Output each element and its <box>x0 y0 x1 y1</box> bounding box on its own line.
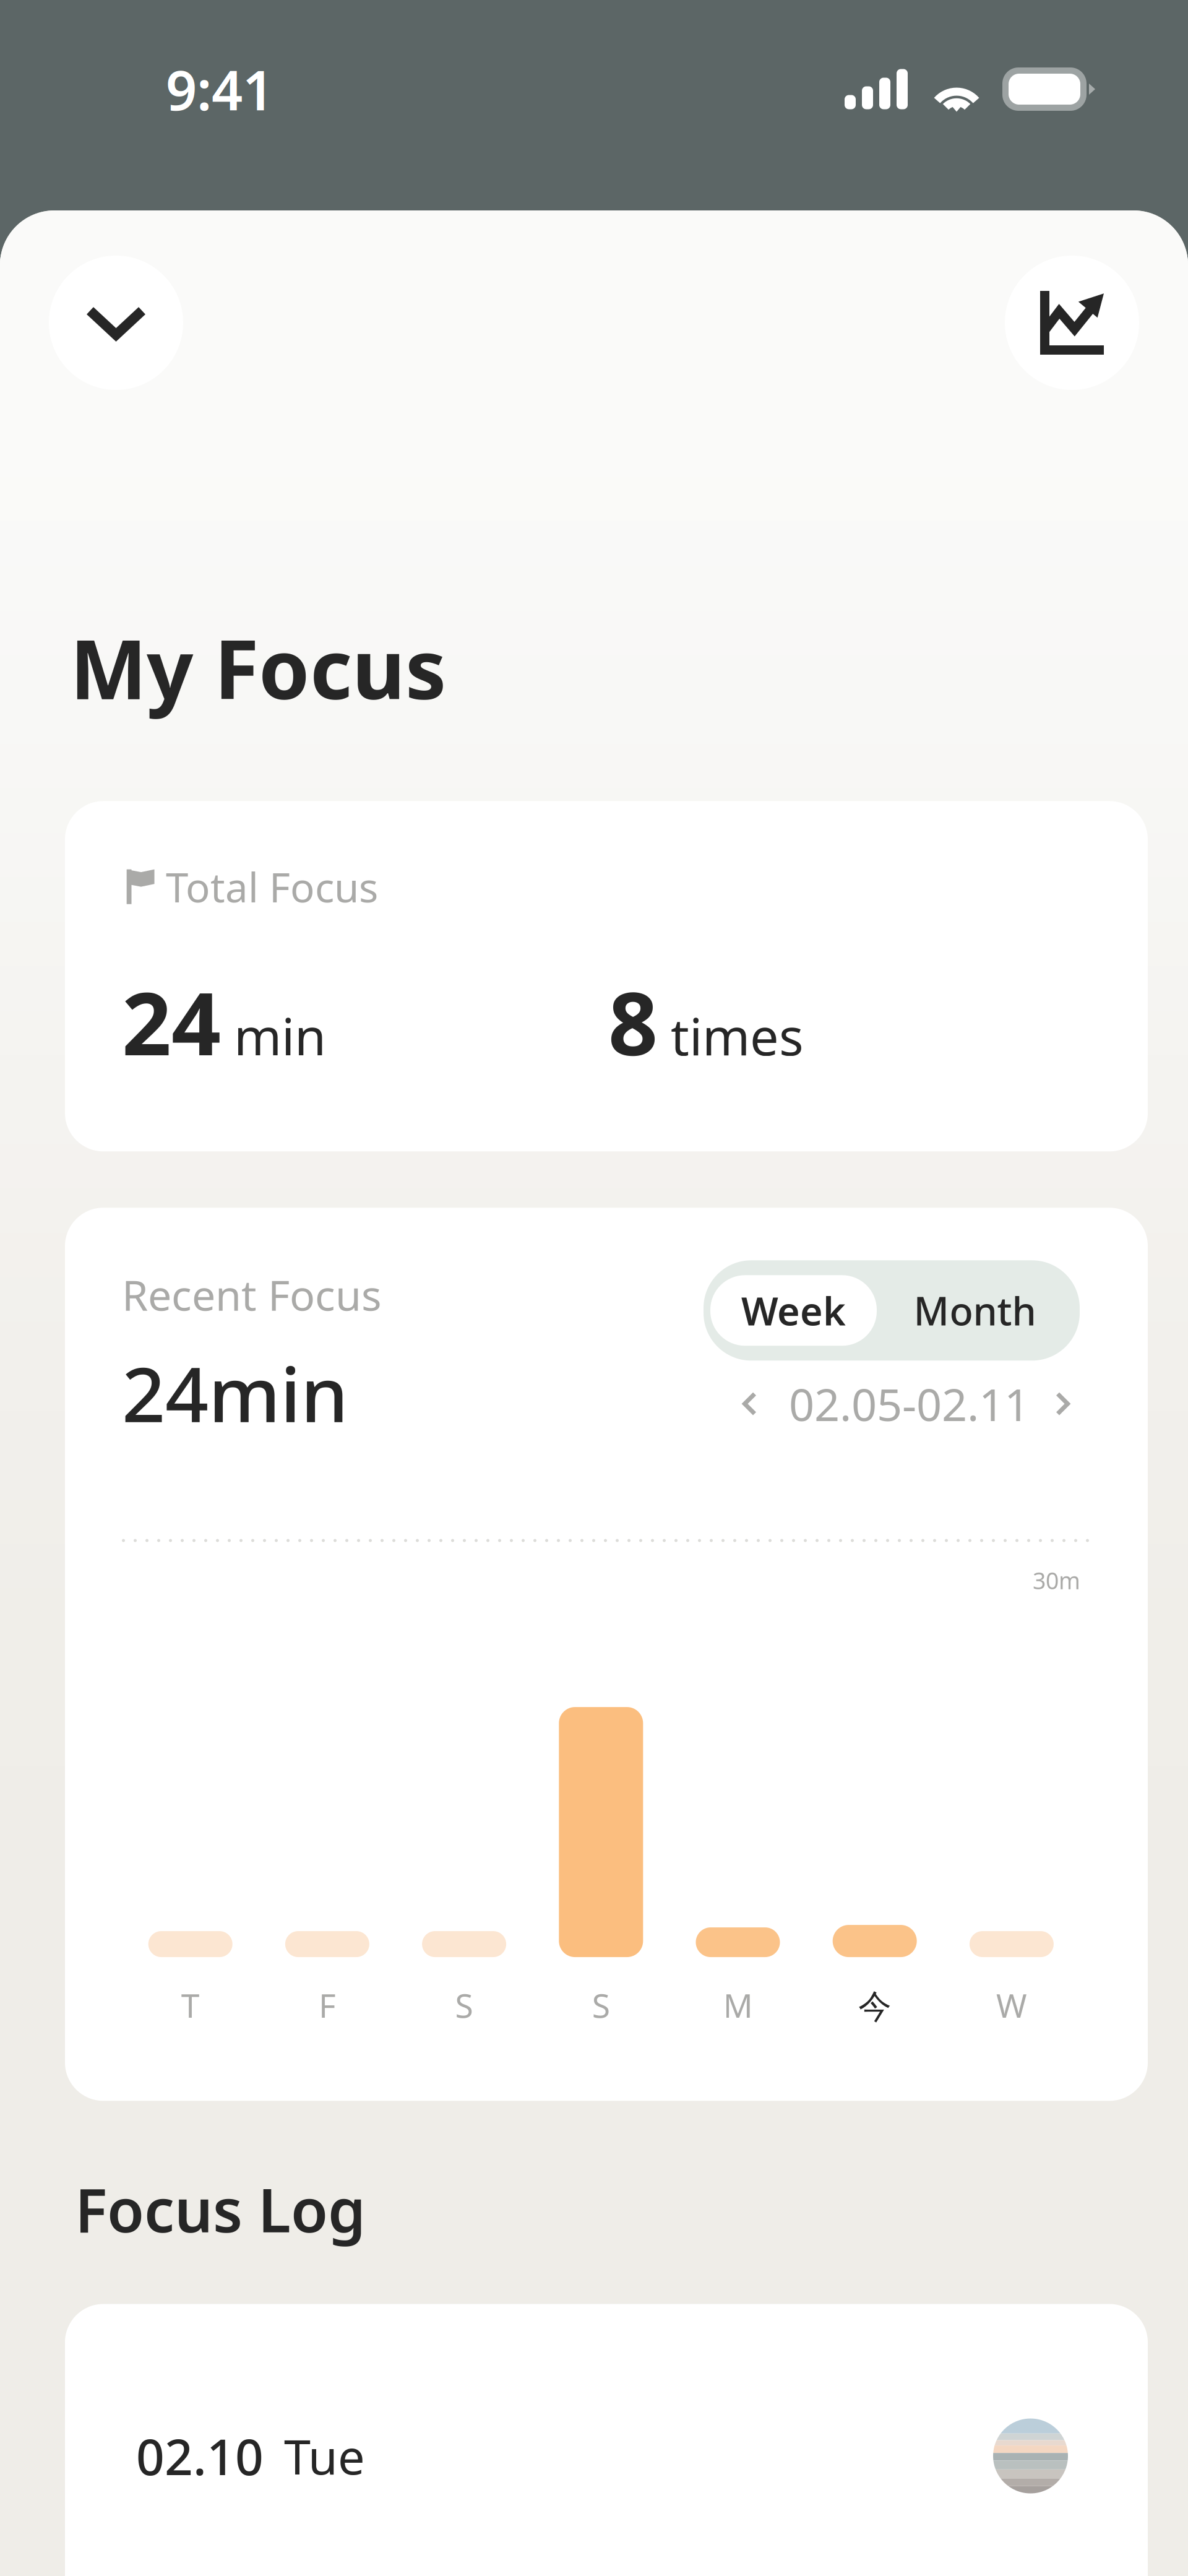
button[interactable]: Statistics <box>1005 256 1139 390</box>
button[interactable]: 02.10 <box>65 2304 1148 2576</box>
staticText: 9:41 <box>166 53 273 125</box>
staticText: 24 <box>122 964 221 1079</box>
button[interactable]: Next week <box>1047 1383 1078 1425</box>
staticText: S <box>592 1983 610 2027</box>
staticText: 8 <box>608 964 658 1079</box>
staticText: Recent Focus <box>122 1267 382 1322</box>
button[interactable]: Close <box>49 256 183 390</box>
staticText: Total Focus <box>166 860 378 914</box>
staticText: 02.05-02.11 <box>789 1374 1030 1433</box>
button[interactable]: Week <box>710 1275 877 1346</box>
staticText: Focus Log <box>75 2169 366 2249</box>
staticText: S <box>455 1983 473 2027</box>
staticText: 30m <box>1033 1565 1080 1596</box>
staticText: F <box>319 1983 336 2027</box>
staticText: 今 <box>858 1987 891 2027</box>
staticText: times <box>658 1002 804 1070</box>
staticText: 24min <box>122 1342 348 1443</box>
staticText: 02.10 <box>136 2423 264 2489</box>
staticText: Week <box>741 1285 846 1336</box>
staticText: M <box>723 1983 753 2027</box>
staticText: Month <box>914 1285 1036 1336</box>
button[interactable]: Previous week <box>734 1383 785 1425</box>
staticText: W <box>996 1983 1027 2027</box>
button[interactable]: Month <box>877 1275 1073 1346</box>
staticText: min <box>221 1002 326 1070</box>
staticText: My Focus <box>70 613 446 722</box>
staticText: Tue <box>284 2424 365 2488</box>
staticText: T <box>181 1983 200 2027</box>
